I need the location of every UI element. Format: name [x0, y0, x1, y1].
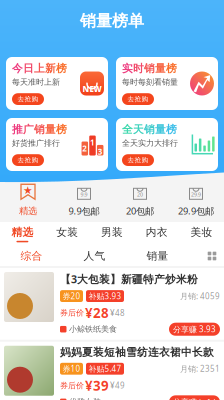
staticText: 3	[98, 146, 103, 157]
staticText: 每时每刻看销量	[122, 77, 178, 87]
button[interactable]: 全	[116, 118, 218, 171]
staticText: 去抢购	[17, 156, 38, 164]
staticText: 分享赚 3.93	[173, 324, 216, 334]
staticText: 精选	[19, 205, 37, 217]
staticText: 1	[90, 137, 95, 148]
staticText: 日	[23, 62, 34, 75]
staticText: 20	[137, 191, 143, 198]
staticText: 销	[34, 123, 45, 136]
button[interactable]: 精选	[0, 222, 45, 246]
staticText: NEW	[82, 84, 101, 94]
staticText: 销量	[146, 249, 168, 262]
button[interactable]: 29.9	[168, 183, 224, 217]
staticText: 美妆	[191, 226, 213, 239]
staticText: 去抢购	[17, 95, 38, 103]
staticText: ¥28	[85, 304, 109, 322]
staticText: 量	[45, 123, 56, 136]
staticText: 小鲸铁纸美食	[69, 324, 117, 334]
button[interactable]: 20	[112, 183, 168, 217]
staticText: 实	[122, 62, 133, 75]
staticText: 男装	[101, 226, 123, 239]
staticText: 29.9	[191, 191, 201, 198]
staticText: 补贴3.93	[88, 291, 121, 301]
staticText: ¥48	[110, 307, 125, 318]
staticText: 月销: 2351	[180, 363, 220, 374]
staticText: 销	[144, 62, 155, 75]
button[interactable]: 9.9	[56, 183, 112, 217]
staticText: 全天实力大排行	[122, 138, 178, 148]
button[interactable]: 实	[116, 57, 218, 110]
staticText: 销	[144, 123, 155, 136]
staticText: 榜	[166, 62, 177, 75]
staticText: 月销: 4059	[180, 291, 220, 301]
staticText: 补贴5.47	[88, 363, 121, 374]
staticText: 榜	[166, 123, 177, 136]
button[interactable]: 【3大包装】新疆特产炒米粉	[0, 268, 224, 340]
staticText: 【3大包装】新疆特产炒米粉	[60, 272, 198, 286]
button[interactable]: 今	[6, 57, 108, 110]
staticText: 推	[12, 123, 23, 136]
staticText: 券20	[62, 291, 80, 301]
staticText: 综合	[20, 249, 42, 262]
staticText: 券10	[62, 363, 80, 374]
staticText: 20包邮	[126, 205, 154, 217]
staticText: 券后价	[60, 308, 84, 318]
staticText: 榜	[56, 123, 67, 136]
staticText: ★	[23, 184, 33, 196]
staticText: 2	[82, 143, 87, 154]
staticText: 优雅女装	[69, 397, 101, 400]
staticText: 销量榜单	[80, 11, 144, 31]
staticText: 广	[23, 123, 34, 136]
staticText: 时	[133, 62, 144, 75]
button[interactable]: 人气	[63, 246, 126, 266]
staticText: 量	[155, 62, 166, 75]
staticText: 人气	[83, 249, 105, 262]
staticText: ¥39	[85, 377, 109, 394]
staticText: 9.9	[80, 191, 87, 198]
staticText: 妈妈夏装短袖雪纺连衣裙中长款	[60, 346, 214, 359]
button[interactable]: 内衣	[134, 222, 179, 246]
button[interactable]: 推	[6, 118, 108, 171]
button[interactable]: 综合	[0, 246, 63, 266]
staticText: 好货推广排行	[12, 138, 60, 148]
staticText: 29.9包邮	[178, 205, 214, 217]
staticText: 新	[45, 62, 56, 75]
staticText: 女装	[56, 226, 78, 239]
staticText: 9.9包邮	[68, 205, 99, 217]
staticText: 内衣	[146, 226, 168, 239]
button[interactable]: 男装	[90, 222, 134, 246]
staticText: 券后价	[60, 381, 84, 390]
staticText: 去抢购	[127, 95, 148, 103]
staticText: 每天准时上新	[12, 77, 60, 87]
button[interactable]: 女装	[45, 222, 90, 246]
staticText: 今	[12, 62, 23, 75]
button[interactable]: Switch layout	[200, 246, 224, 266]
button[interactable]: 美妆	[179, 222, 224, 246]
staticText: 分享赚 5.47	[173, 397, 216, 400]
staticText: 榜	[56, 62, 67, 75]
button[interactable]: 销量	[126, 246, 189, 266]
staticText: 天	[133, 123, 144, 136]
staticText: ¥49	[110, 380, 125, 391]
staticText: 上	[34, 62, 45, 75]
staticText: 去抢购	[127, 156, 148, 164]
staticText: 精选	[11, 226, 33, 239]
button[interactable]: ★	[0, 183, 56, 217]
staticText: 全	[122, 123, 133, 136]
staticText: 量	[155, 123, 166, 136]
button[interactable]: 妈妈夏装短袖雪纺连衣裙中长款	[0, 342, 224, 400]
